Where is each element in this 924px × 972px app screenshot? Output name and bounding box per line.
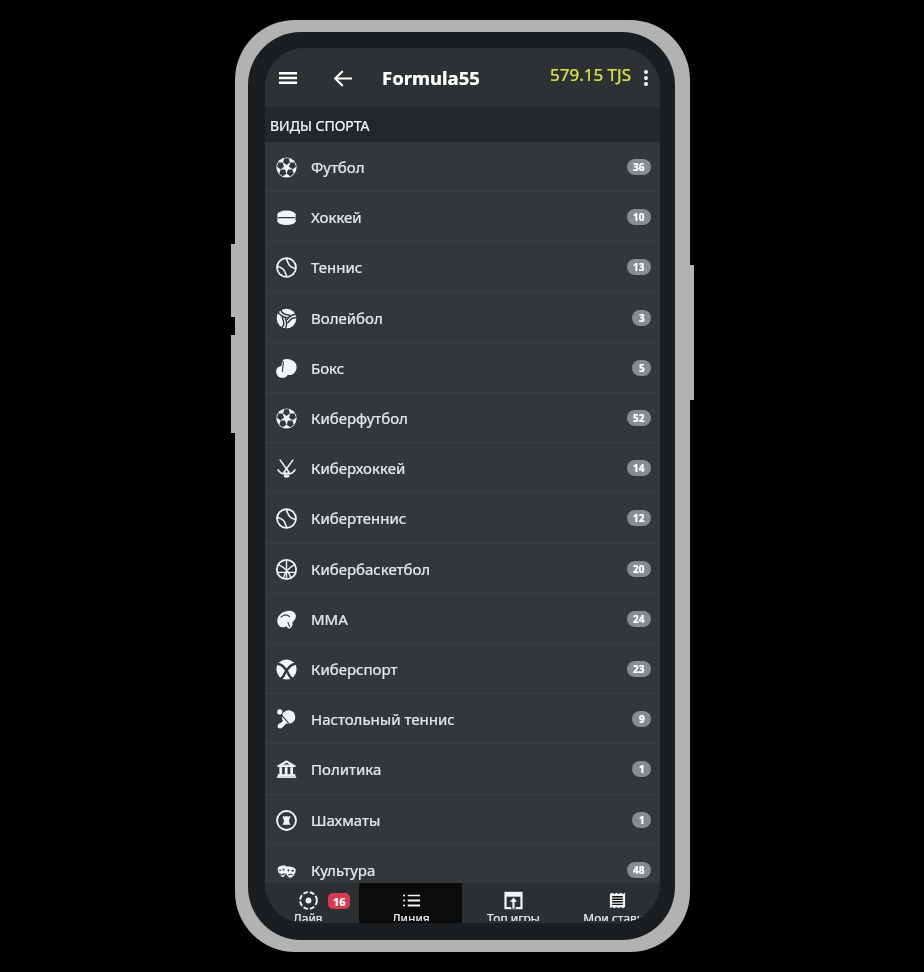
staticText: Настольный теннис bbox=[311, 709, 455, 729]
staticText: Киберфутбол bbox=[311, 408, 408, 428]
button[interactable]: Кибербаскетбол bbox=[265, 544, 660, 595]
button[interactable]: Политика bbox=[265, 744, 660, 795]
button[interactable]: More options bbox=[632, 64, 660, 92]
staticText: Линия bbox=[392, 910, 430, 921]
staticText: 12 bbox=[633, 511, 645, 525]
staticText: MMA bbox=[311, 609, 348, 629]
staticText: 13 bbox=[633, 260, 645, 274]
staticText: Культура bbox=[311, 860, 376, 880]
staticText: Теннис bbox=[311, 257, 363, 277]
staticText: 16 bbox=[333, 894, 346, 909]
staticText: 48 bbox=[633, 863, 645, 877]
button[interactable]: 16 bbox=[265, 883, 359, 923]
button[interactable]: Линия bbox=[359, 883, 462, 923]
staticText: 579.15 TJS bbox=[550, 63, 632, 86]
staticText: 1 bbox=[639, 813, 645, 827]
staticText: Formula55 bbox=[382, 65, 480, 90]
staticText: 23 bbox=[633, 662, 645, 676]
staticText: Лайв bbox=[293, 910, 323, 921]
button[interactable]: Волейбол bbox=[265, 293, 660, 344]
staticText: Шахматы bbox=[311, 810, 381, 830]
button[interactable]: Топ игры bbox=[462, 883, 565, 923]
staticText: 10 bbox=[633, 210, 645, 224]
button[interactable]: Киберфутбол bbox=[265, 393, 660, 444]
button[interactable]: Культура bbox=[265, 845, 660, 896]
staticText: ВИДЫ СПОРТА bbox=[270, 116, 370, 135]
button[interactable]: Теннис bbox=[265, 242, 660, 293]
button[interactable]: Футбол bbox=[265, 142, 660, 193]
staticText: Футбол bbox=[311, 157, 365, 177]
staticText: 5 bbox=[639, 361, 645, 375]
staticText: 52 bbox=[633, 411, 645, 425]
staticText: Кибертеннис bbox=[311, 508, 407, 528]
button[interactable]: MMA bbox=[265, 594, 660, 645]
staticText: Топ игры bbox=[487, 910, 540, 921]
button[interactable]: Menu bbox=[270, 60, 306, 96]
button[interactable]: Хоккей bbox=[265, 192, 660, 243]
staticText: Кибербаскетбол bbox=[311, 559, 431, 579]
staticText: 20 bbox=[633, 562, 645, 576]
button[interactable]: Настольный теннис bbox=[265, 694, 660, 745]
staticText: Мои ставки bbox=[583, 910, 651, 921]
staticText: Бокс bbox=[311, 358, 345, 378]
button[interactable]: Бокс bbox=[265, 343, 660, 394]
staticText: 24 bbox=[633, 612, 645, 626]
staticText: Киберхоккей bbox=[311, 458, 406, 478]
button[interactable]: Мои ставки bbox=[565, 883, 660, 923]
staticText: Киберспорт bbox=[311, 659, 398, 679]
staticText: 1 bbox=[639, 762, 645, 776]
staticText: 14 bbox=[633, 461, 645, 475]
button[interactable]: Back bbox=[325, 60, 361, 96]
button[interactable]: Шахматы bbox=[265, 795, 660, 846]
button[interactable]: Киберхоккей bbox=[265, 443, 660, 494]
staticText: Хоккей bbox=[311, 207, 362, 227]
button[interactable]: Киберспорт bbox=[265, 644, 660, 695]
staticText: 9 bbox=[639, 712, 645, 726]
button[interactable]: Кибертеннис bbox=[265, 493, 660, 544]
staticText: Волейбол bbox=[311, 308, 383, 328]
staticText: 36 bbox=[633, 160, 645, 174]
staticText: Политика bbox=[311, 759, 382, 779]
staticText: 3 bbox=[639, 311, 645, 325]
